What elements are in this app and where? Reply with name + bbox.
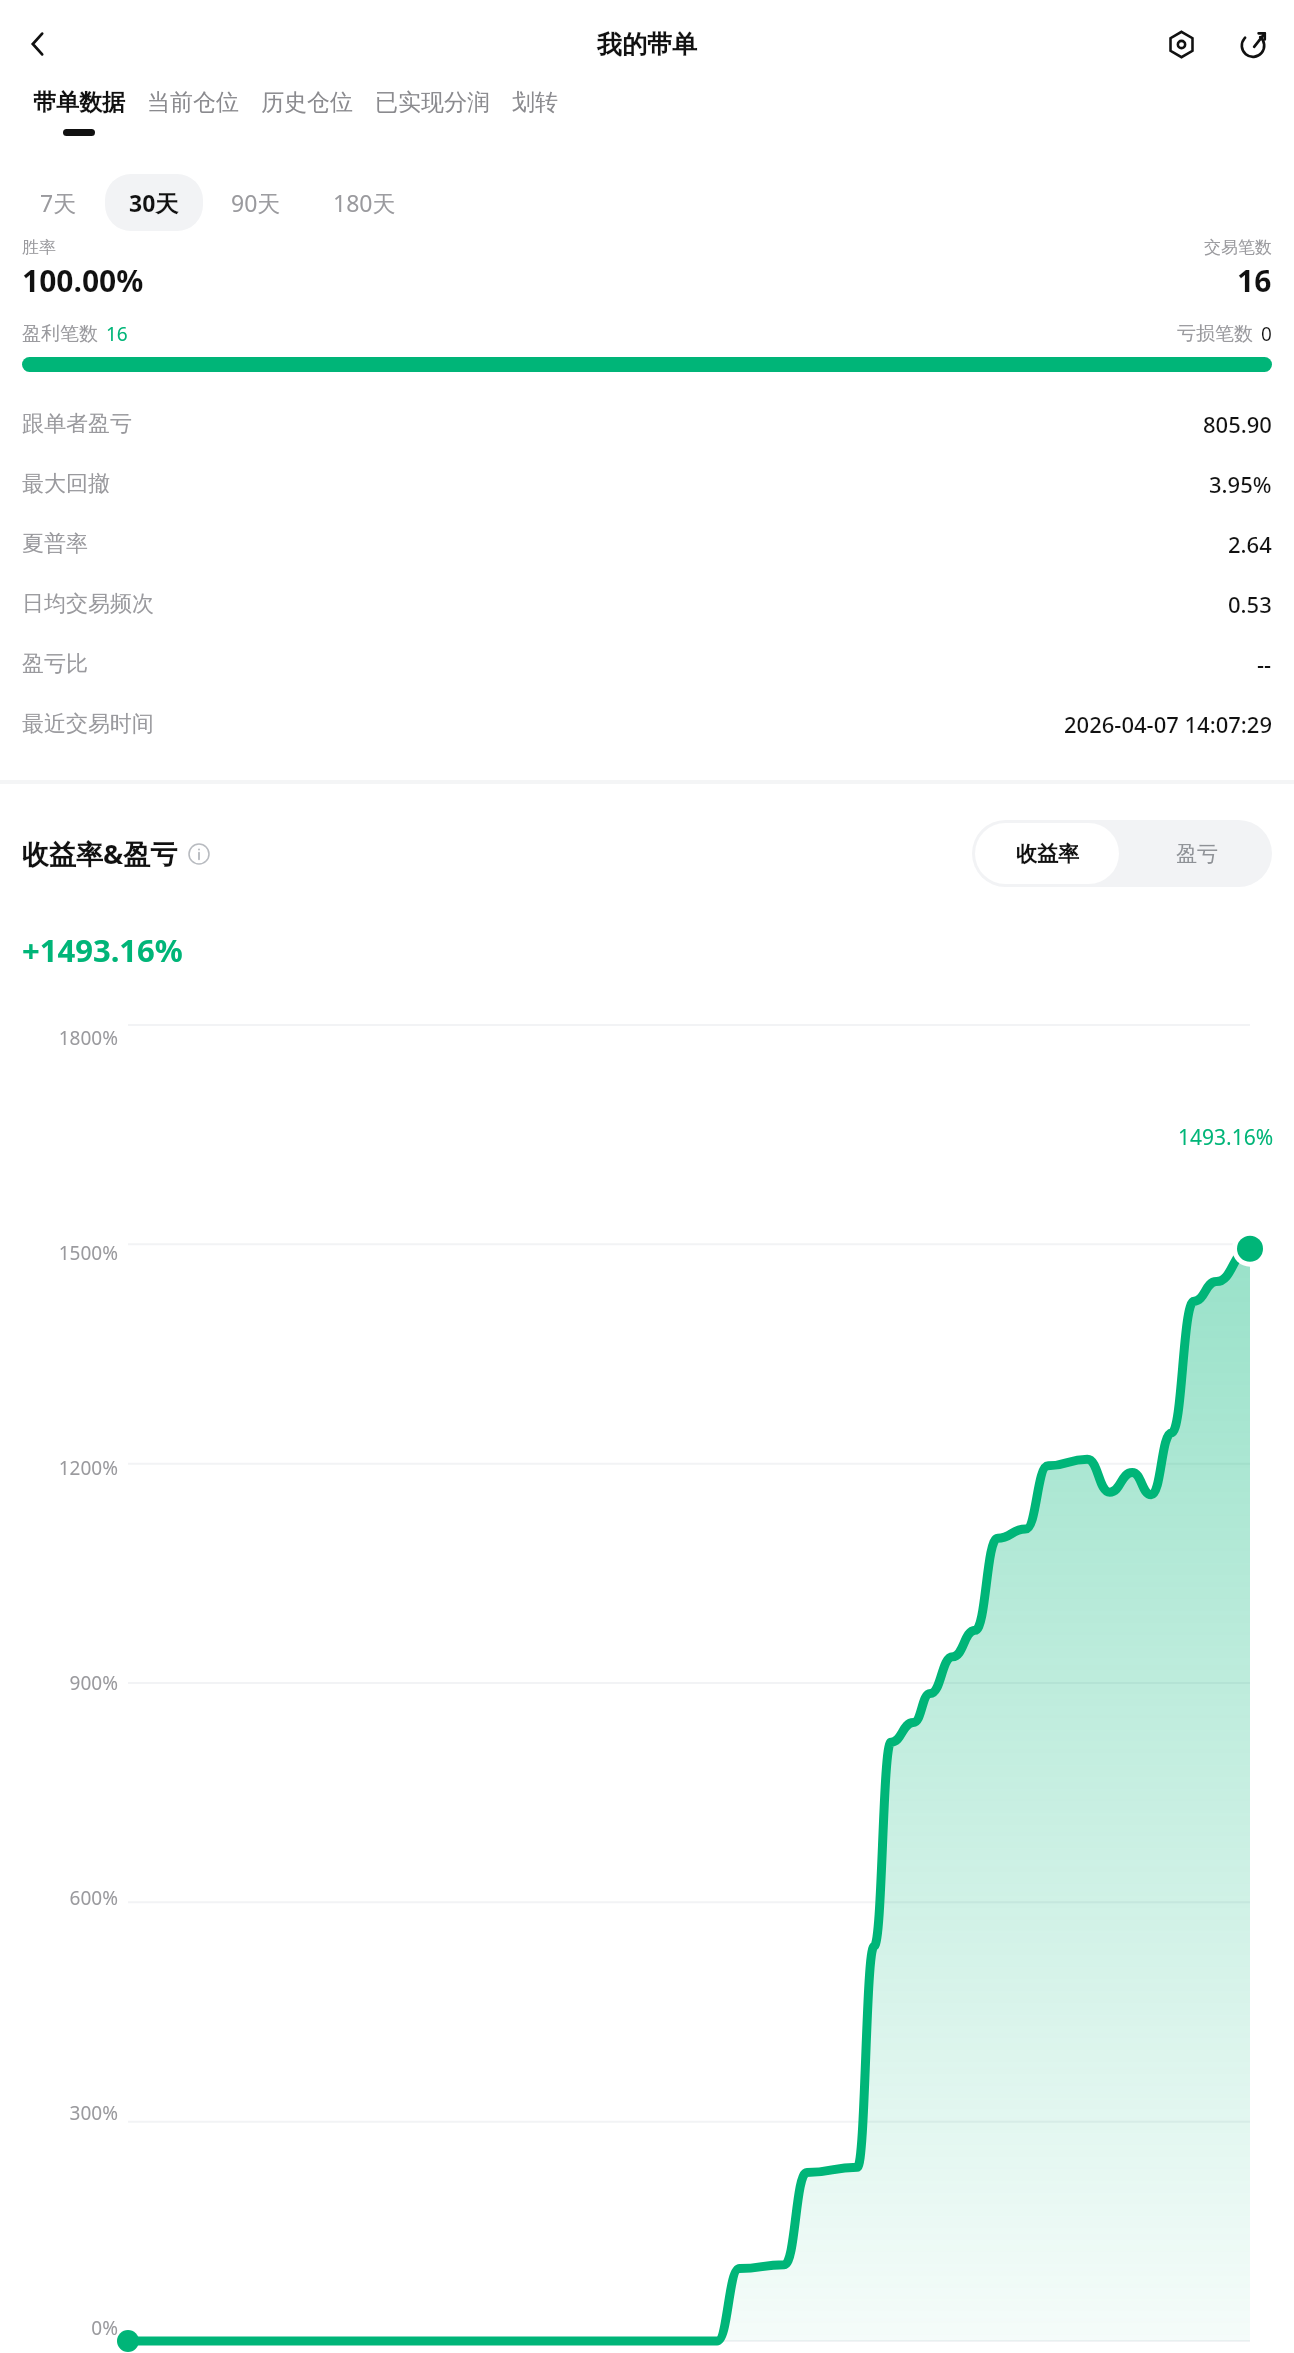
button[interactable]: Info bbox=[188, 843, 210, 865]
button[interactable]: 收益率 bbox=[975, 823, 1119, 884]
staticText: 1493.16% bbox=[1178, 1123, 1274, 1152]
button[interactable]: Settings bbox=[1154, 17, 1208, 71]
button[interactable]: 带单数据 bbox=[33, 88, 125, 136]
button[interactable]: 最大回撤 bbox=[0, 454, 1294, 514]
staticText: -- bbox=[1257, 649, 1272, 679]
button[interactable]: 跟单者盈亏 bbox=[0, 394, 1294, 454]
button[interactable]: 当前仓位 bbox=[147, 88, 239, 129]
staticText: 跟单者盈亏 bbox=[22, 410, 132, 438]
staticText: 0% bbox=[91, 2315, 118, 2341]
staticText: 2026-04-07 14:07:29 bbox=[1064, 709, 1272, 739]
staticText: 2.64 bbox=[1228, 529, 1272, 559]
staticText: 收益率 bbox=[1016, 841, 1079, 867]
staticText: 亏损笔数 bbox=[1177, 322, 1253, 346]
staticText: 已实现分润 bbox=[375, 88, 490, 117]
staticText: 0.53 bbox=[1228, 589, 1272, 619]
staticText: 当前仓位 bbox=[147, 88, 239, 117]
staticText: 0 bbox=[1261, 321, 1272, 347]
staticText: 我的带单 bbox=[597, 29, 697, 60]
staticText: 100.00% bbox=[22, 260, 144, 301]
staticText: 600% bbox=[69, 1885, 118, 1911]
staticText: 7天 bbox=[40, 187, 77, 218]
staticText: 交易笔数 bbox=[1204, 237, 1272, 258]
button[interactable]: 夏普率 bbox=[0, 514, 1294, 574]
staticText: 夏普率 bbox=[22, 530, 88, 558]
button[interactable]: 盈亏比 bbox=[0, 634, 1294, 694]
button[interactable]: 180天 bbox=[309, 174, 420, 231]
staticText: 带单数据 bbox=[33, 88, 125, 117]
staticText: 90天 bbox=[231, 187, 281, 218]
staticText: 30天 bbox=[129, 187, 179, 218]
button[interactable]: Back bbox=[10, 16, 66, 72]
button[interactable]: 30天 bbox=[105, 174, 203, 231]
staticText: 收益率&盈亏 bbox=[22, 835, 178, 872]
staticText: +1493.16% bbox=[22, 929, 183, 971]
button[interactable]: 已实现分润 bbox=[375, 88, 490, 129]
staticText: 最近交易时间 bbox=[22, 710, 154, 738]
staticText: 16 bbox=[106, 321, 128, 347]
staticText: 1500% bbox=[58, 1240, 118, 1266]
button[interactable]: Share bbox=[1226, 17, 1280, 71]
staticText: 180天 bbox=[333, 187, 396, 218]
staticText: 900% bbox=[69, 1670, 118, 1696]
staticText: 盈利笔数 bbox=[22, 322, 98, 346]
staticText: 划转 bbox=[512, 88, 558, 117]
button[interactable]: 日均交易频次 bbox=[0, 574, 1294, 634]
staticText: 300% bbox=[69, 2100, 118, 2126]
staticText: 805.90 bbox=[1203, 409, 1272, 439]
button[interactable]: 盈亏 bbox=[1122, 820, 1272, 887]
staticText: 历史仓位 bbox=[261, 88, 353, 117]
staticText: 胜率 bbox=[22, 237, 56, 258]
staticText: 盈亏 bbox=[1176, 841, 1218, 867]
button[interactable]: 7天 bbox=[16, 174, 101, 231]
staticText: 日均交易频次 bbox=[22, 590, 154, 618]
button[interactable]: 90天 bbox=[207, 174, 305, 231]
button[interactable]: 划转 bbox=[512, 88, 558, 129]
staticText: 盈亏比 bbox=[22, 650, 88, 678]
staticText: 3.95% bbox=[1209, 469, 1272, 499]
button[interactable]: 历史仓位 bbox=[261, 88, 353, 129]
staticText: 1800% bbox=[58, 1025, 118, 1051]
staticText: 1200% bbox=[58, 1455, 118, 1481]
button[interactable]: 最近交易时间 bbox=[0, 694, 1294, 754]
staticText: 16 bbox=[1237, 260, 1272, 301]
staticText: 最大回撤 bbox=[22, 470, 110, 498]
